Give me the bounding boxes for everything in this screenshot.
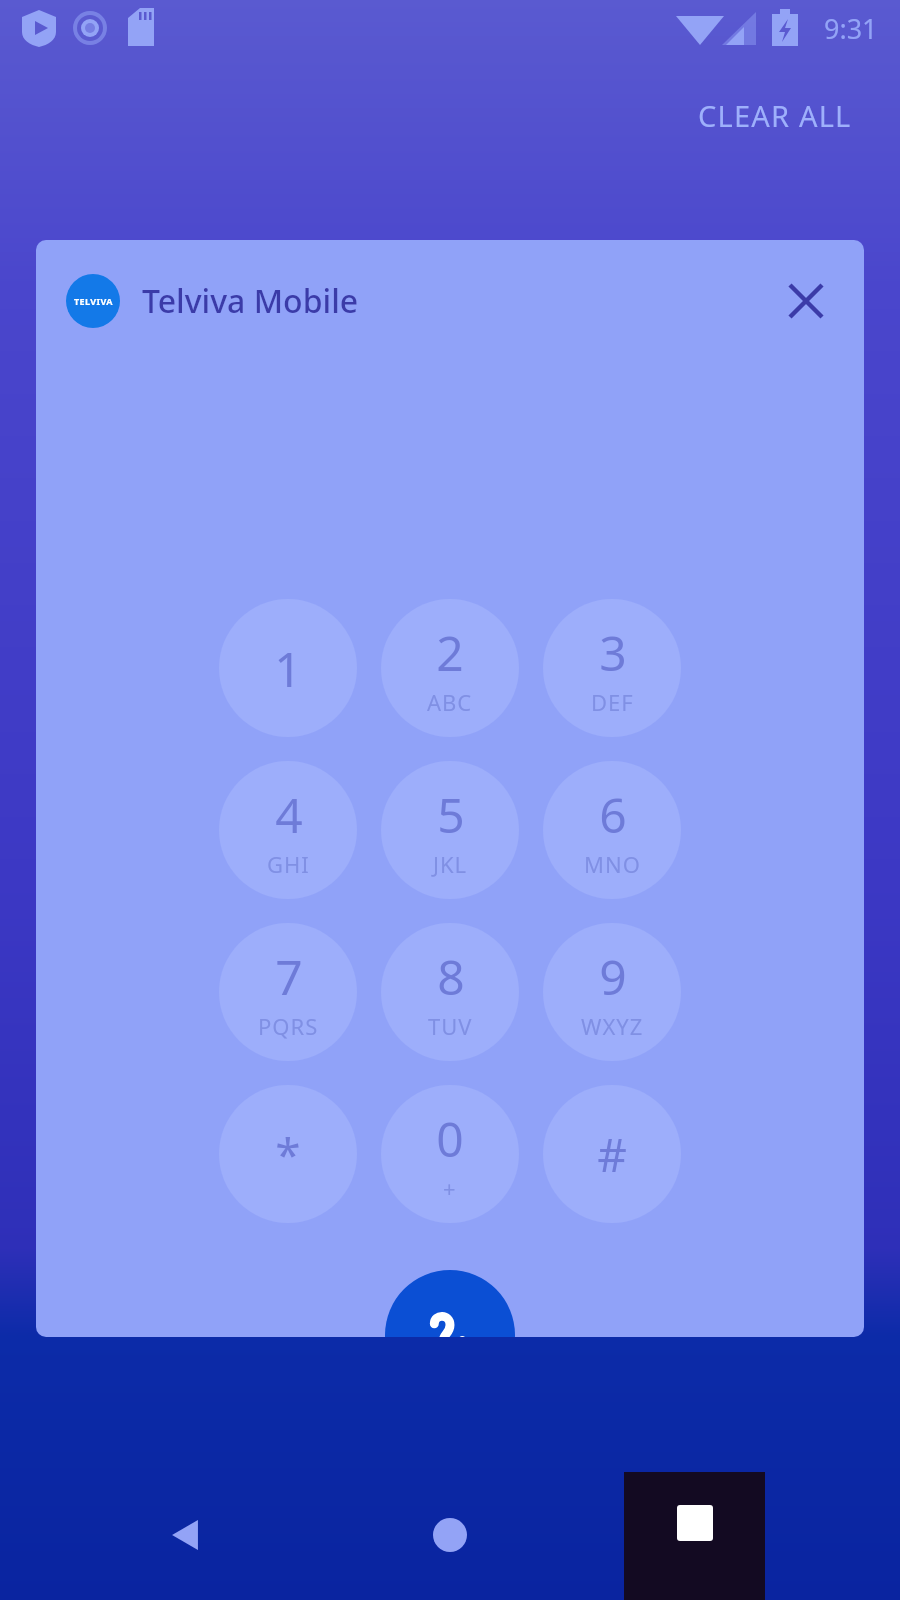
button[interactable]: Close [778,273,834,329]
button[interactable]: Back [150,1500,220,1570]
button[interactable]: 9 [543,923,681,1061]
staticText: PQRS [258,1011,319,1041]
button[interactable]: CLEAR ALL [692,92,858,139]
staticText: WXYZ [581,1011,644,1041]
staticText: 9:31 [824,10,878,47]
staticText: 1 [274,636,302,701]
button[interactable]: TELVIVA [36,240,864,1337]
staticText: GHI [267,849,310,879]
button[interactable]: * [219,1085,357,1223]
button[interactable]: 8 [381,923,519,1061]
staticText: CLEAR ALL [698,96,852,135]
button[interactable]: 5 [381,761,519,899]
staticText: JKL [433,849,468,879]
staticText: * [275,1123,301,1186]
staticText: 2 [436,620,464,685]
staticText: Telviva Mobile [142,279,359,323]
button[interactable]: 6 [543,761,681,899]
staticText: # [597,1123,627,1186]
button[interactable]: 2 [381,599,519,737]
staticText: 5 [437,782,465,847]
staticText: 3 [599,620,627,685]
staticText: 4 [275,782,303,847]
button[interactable]: 0 [381,1085,519,1223]
staticText: ABC [427,687,473,717]
staticText: 6 [599,782,627,847]
button[interactable]: Home [415,1500,485,1570]
staticText: TELVIVA [74,295,113,307]
button[interactable]: Recent apps [624,1472,765,1600]
staticText: 7 [275,944,303,1009]
button[interactable]: Call [385,1270,515,1337]
staticText: 9 [599,944,627,1009]
button[interactable]: 7 [219,923,357,1061]
staticText: TUV [428,1011,473,1041]
button[interactable]: 1 [219,599,357,737]
staticText: 0 [436,1106,464,1171]
staticText: 8 [437,944,465,1009]
staticText: MNO [584,849,641,879]
button[interactable]: 3 [543,599,681,737]
button[interactable]: # [543,1085,681,1223]
staticText: DEF [591,687,634,717]
button[interactable]: 4 [219,761,357,899]
staticText: + [443,1173,457,1203]
